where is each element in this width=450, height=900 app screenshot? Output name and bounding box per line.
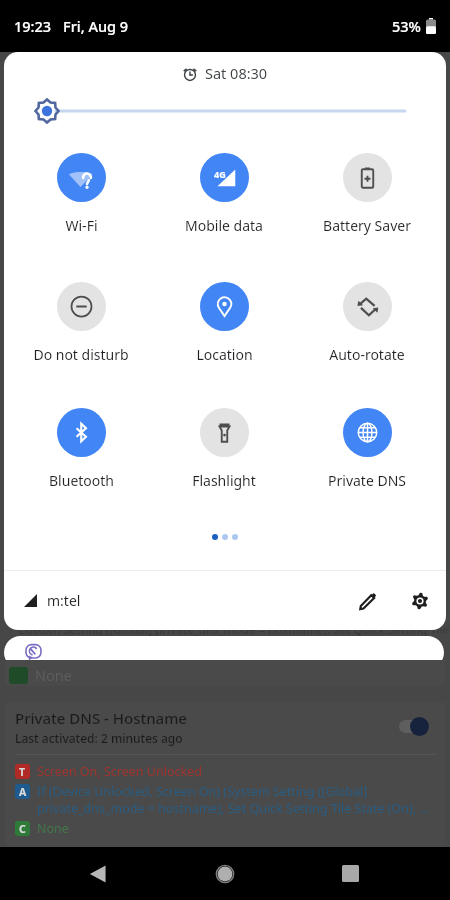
button[interactable]: Private DNS <box>317 408 417 500</box>
button[interactable]: Wi-Fi <box>31 153 131 245</box>
button[interactable]: Flashlight <box>174 408 274 500</box>
button[interactable]: Settings <box>403 584 437 618</box>
staticText: Do not disturb <box>33 345 129 364</box>
staticText: Bluetooth <box>49 471 114 490</box>
staticText: If (Device Unlocked, Screen On) (System … <box>37 783 368 800</box>
button[interactable] <box>4 636 444 669</box>
staticText: Fri, Aug 9 <box>63 16 129 36</box>
staticText: C <box>19 822 26 836</box>
button[interactable]: Auto-rotate <box>317 282 417 374</box>
staticText: None <box>35 665 72 685</box>
staticText: T <box>19 765 26 779</box>
button[interactable]: Bluetooth <box>31 408 131 500</box>
button[interactable]: 4G <box>174 153 274 245</box>
staticText: Private DNS <box>328 471 406 490</box>
button[interactable]: Brightness <box>4 90 446 130</box>
staticText: 4G <box>214 168 226 180</box>
staticText: Mobile data <box>185 216 263 235</box>
button[interactable]: m:tel <box>24 591 81 610</box>
staticText: 19:23 <box>14 16 52 36</box>
staticText: A <box>19 785 27 799</box>
staticText: None <box>37 820 69 837</box>
staticText: m:tel <box>47 591 81 610</box>
button[interactable]: Home <box>205 847 245 900</box>
staticText: Last activated: 2 minutes ago <box>15 730 183 746</box>
staticText: Custom Setting ([Global] private_dns_mod… <box>18 622 450 638</box>
button[interactable]: Battery Saver <box>317 153 417 245</box>
staticText: Private DNS - Hostname <box>15 708 187 728</box>
staticText: Flashlight <box>192 471 256 490</box>
button[interactable]: Location <box>174 282 274 374</box>
button[interactable]: Do not disturb <box>31 282 131 374</box>
button[interactable]: Recents <box>330 847 370 900</box>
staticText: 53% <box>392 16 421 36</box>
staticText: Sat 08:30 <box>205 63 268 83</box>
staticText: Screen On, Screen Unlocked <box>37 763 202 780</box>
staticText: Location <box>196 345 253 364</box>
staticText: Auto-rotate <box>329 345 405 364</box>
staticText: Battery Saver <box>323 216 411 235</box>
staticText: Wi-Fi <box>65 216 98 235</box>
button[interactable]: Edit <box>351 584 385 618</box>
button[interactable]: Private DNS - Hostname <box>5 702 445 847</box>
staticText: private_dns_mode = hostname), Set Quick … <box>37 800 430 817</box>
button[interactable]: Back <box>78 847 118 900</box>
